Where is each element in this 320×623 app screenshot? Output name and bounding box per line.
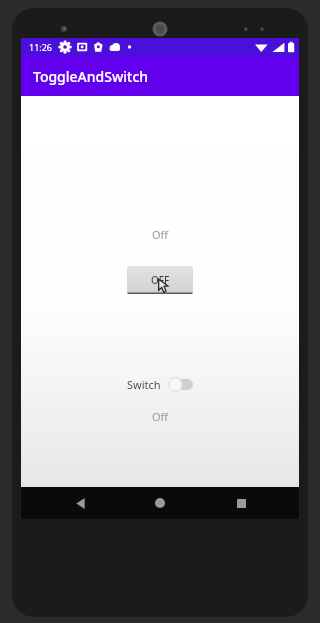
- button[interactable]: Switch: [127, 377, 193, 392]
- staticText: ToggleAndSwitch: [33, 67, 149, 86]
- staticText: Off: [21, 227, 299, 242]
- button[interactable]: OFF: [127, 266, 193, 294]
- staticText: OFF: [151, 273, 170, 287]
- staticText: Off: [21, 409, 299, 424]
- button[interactable]: Back: [58, 487, 102, 519]
- other: Switch toggle, off: [168, 377, 193, 392]
- staticText: Switch: [127, 377, 161, 392]
- staticText: 11:26: [29, 41, 53, 53]
- button[interactable]: Home: [138, 487, 182, 519]
- button[interactable]: Recent apps: [219, 487, 263, 519]
